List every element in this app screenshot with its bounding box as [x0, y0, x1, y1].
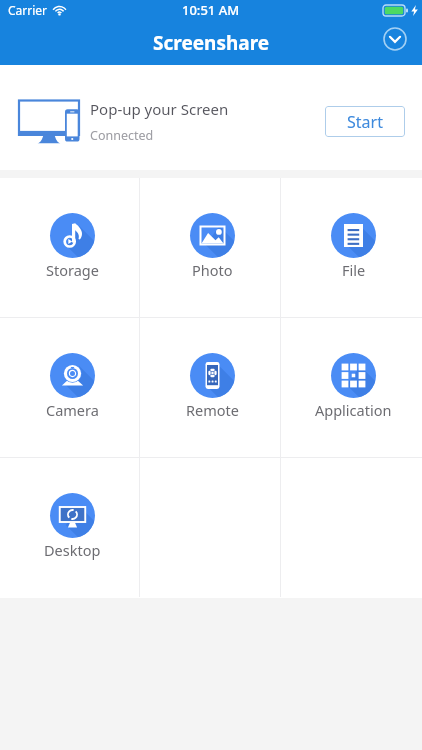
staticText: Photo: [192, 260, 233, 280]
staticText: Pop-up your Screen: [90, 99, 229, 119]
button[interactable]: Camera: [0, 318, 140, 457]
staticText: Desktop: [44, 540, 101, 560]
staticText: Application: [315, 400, 392, 420]
button[interactable]: File: [281, 178, 422, 317]
button[interactable]: Start: [325, 106, 405, 137]
staticText: Storage: [46, 260, 99, 280]
button[interactable]: Application: [281, 318, 422, 457]
staticText: Start: [347, 111, 383, 133]
button[interactable]: Collapse: [376, 20, 414, 57]
button[interactable]: Remote: [140, 318, 281, 457]
staticText: Carrier: [8, 2, 48, 18]
button[interactable]: Storage: [0, 178, 140, 317]
staticText: 10:51 AM: [182, 1, 240, 19]
staticText: Connected: [90, 127, 154, 144]
button[interactable]: Photo: [140, 178, 281, 317]
staticText: File: [342, 260, 366, 280]
staticText: Camera: [46, 400, 99, 420]
button[interactable]: Desktop: [0, 458, 140, 597]
staticText: Screenshare: [153, 30, 270, 56]
staticText: Remote: [186, 400, 239, 420]
